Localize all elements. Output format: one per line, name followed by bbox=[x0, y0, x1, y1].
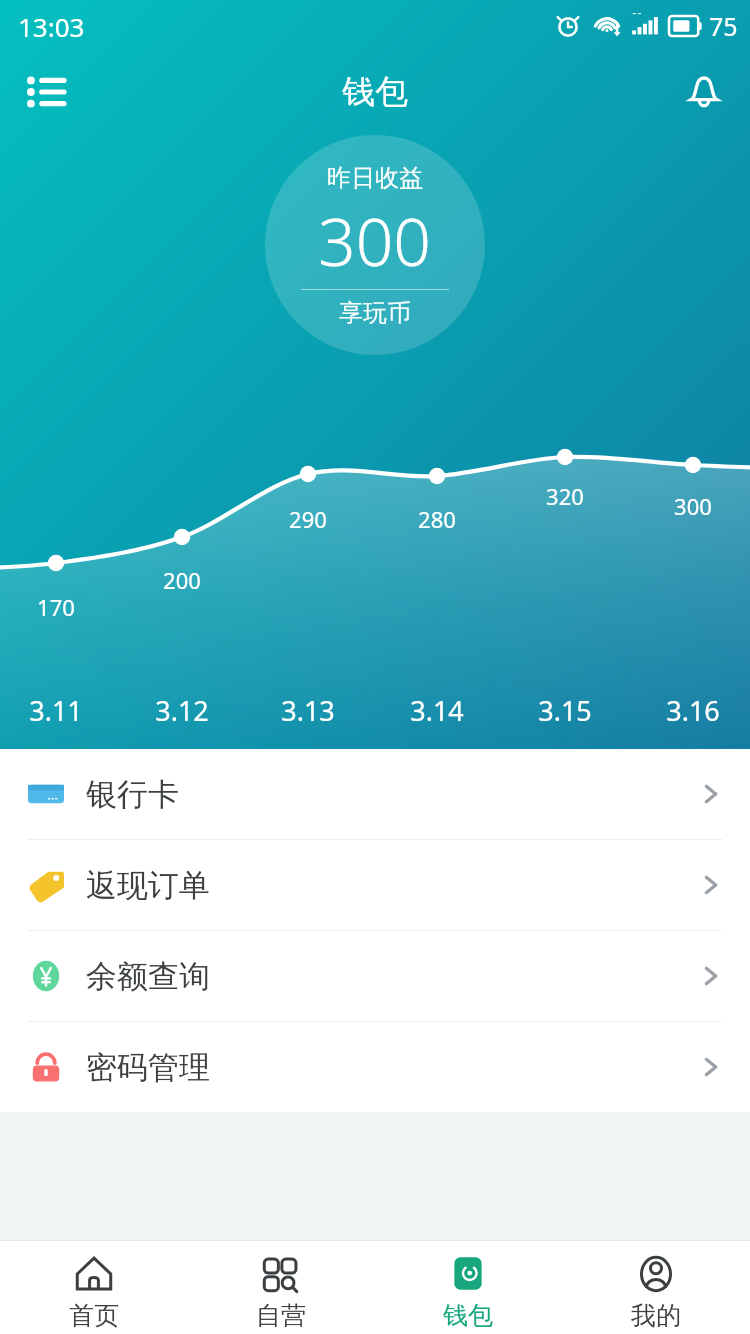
staticText: 3.14 bbox=[397, 692, 477, 729]
button[interactable]: 返现订单 bbox=[0, 840, 750, 930]
staticText: 昨日收益 bbox=[327, 163, 423, 193]
staticText: 我的 bbox=[631, 1300, 681, 1331]
staticText: 3.13 bbox=[268, 692, 348, 729]
button[interactable]: Menu bbox=[14, 60, 78, 124]
staticText: 13:03 bbox=[18, 9, 85, 44]
staticText: 320 bbox=[537, 481, 593, 511]
button[interactable]: 首页 bbox=[0, 1244, 187, 1331]
staticText: 返现订单 bbox=[86, 866, 210, 905]
staticText: 密码管理 bbox=[86, 1048, 210, 1087]
staticText: 银行卡 bbox=[86, 775, 179, 814]
staticText: 280 bbox=[409, 504, 465, 534]
staticText: 290 bbox=[280, 504, 336, 534]
button[interactable]: 银行卡 bbox=[0, 749, 750, 839]
button[interactable]: 我的 bbox=[562, 1244, 750, 1331]
button[interactable]: Notifications bbox=[672, 60, 736, 124]
staticText: 首页 bbox=[69, 1300, 119, 1331]
staticText: 3.15 bbox=[525, 692, 605, 729]
button[interactable]: 余额查询 bbox=[0, 931, 750, 1021]
staticText: 300 bbox=[665, 491, 721, 521]
button[interactable]: 自营 bbox=[187, 1244, 374, 1331]
staticText: 钱包 bbox=[342, 71, 408, 113]
staticText: 170 bbox=[28, 592, 84, 622]
staticText: 自营 bbox=[256, 1300, 306, 1331]
staticText: 3.11 bbox=[16, 692, 96, 729]
staticText: 享玩币 bbox=[339, 298, 411, 328]
staticText: 200 bbox=[154, 565, 210, 595]
button[interactable]: 钱包 bbox=[374, 1244, 562, 1331]
staticText: 余额查询 bbox=[86, 957, 210, 996]
button[interactable]: 密码管理 bbox=[0, 1022, 750, 1112]
staticText: 300 bbox=[318, 195, 432, 285]
staticText: 3.16 bbox=[653, 692, 733, 729]
staticText: 3.12 bbox=[142, 692, 222, 729]
staticText: 75 bbox=[709, 9, 738, 43]
staticText: 钱包 bbox=[443, 1300, 493, 1331]
